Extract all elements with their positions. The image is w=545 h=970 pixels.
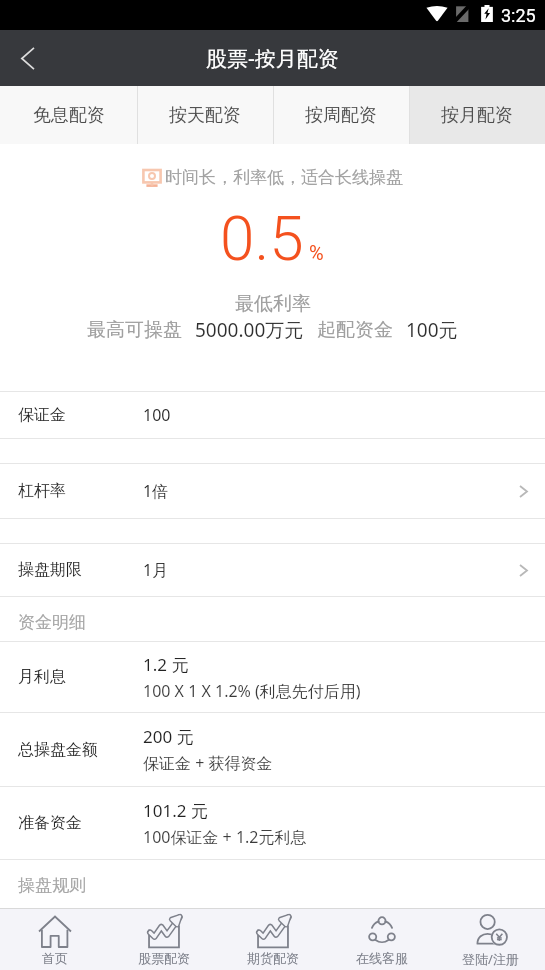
button[interactable]: 按月配资 [409, 86, 545, 144]
staticText: 1倍 [143, 480, 169, 502]
staticText: 操盘规则 [18, 875, 86, 896]
staticText: 按周配资 [305, 104, 377, 127]
staticText: 首页 [42, 950, 68, 966]
staticText: 保证金 + 获得资金 [143, 752, 273, 774]
staticText: 100 [143, 404, 171, 426]
staticText: 准备资金 [18, 813, 82, 833]
staticText: 按月配资 [441, 104, 513, 127]
button[interactable]: 在线客服 [327, 909, 436, 970]
staticText: 1.2 元 [143, 653, 189, 676]
staticText: 资金明细 [18, 612, 86, 633]
button[interactable]: 股票配资 [109, 909, 218, 970]
staticText: 0.5 [220, 202, 304, 275]
button[interactable]: 按周配资 [273, 86, 409, 144]
staticText: 3:25 [501, 5, 536, 26]
staticText: 登陆/注册 [462, 950, 519, 968]
staticText: 1月 [143, 559, 169, 581]
staticText: 最低利率 [235, 292, 311, 316]
staticText: 101.2 元 [143, 799, 208, 822]
staticText: 100元 [406, 317, 458, 343]
staticText: 最高可操盘 [87, 318, 182, 342]
button[interactable]: 总操盘金额 [0, 713, 545, 786]
button[interactable]: 杠杆率 [0, 464, 545, 518]
staticText: 操盘期限 [18, 560, 82, 580]
staticText: 起配资金 [317, 318, 393, 342]
button[interactable]: 登陆/注册 [436, 909, 545, 970]
button[interactable]: 按天配资 [137, 86, 273, 144]
button[interactable]: 期货配资 [218, 909, 327, 970]
button[interactable]: 准备资金 [0, 787, 545, 859]
staticText: % [309, 241, 324, 264]
staticText: 保证金 [18, 405, 66, 425]
staticText: 股票-按月配资 [206, 44, 339, 73]
button[interactable]: 保证金 [0, 392, 545, 438]
staticText: 100 X 1 X 1.2% (利息先付后用) [143, 680, 361, 702]
staticText: 在线客服 [356, 950, 408, 966]
button[interactable]: 操盘期限 [0, 544, 545, 596]
staticText: 总操盘金额 [18, 740, 98, 760]
button[interactable]: 首页 [0, 909, 109, 970]
button[interactable]: 免息配资 [0, 86, 137, 144]
staticText: 100保证金 + 1.2元利息 [143, 826, 307, 848]
staticText: 月利息 [18, 667, 66, 687]
staticText: 杠杆率 [18, 481, 66, 501]
staticText: 时间长，利率低，适合长线操盘 [165, 167, 403, 188]
staticText: 200 元 [143, 725, 194, 748]
staticText: 期货配资 [247, 950, 299, 966]
button[interactable]: Back [0, 30, 54, 86]
staticText: 5000.00万元 [195, 317, 304, 343]
staticText: 股票配资 [138, 950, 190, 966]
button[interactable]: 月利息 [0, 642, 545, 712]
staticText: 按天配资 [169, 104, 241, 127]
staticText: 免息配资 [33, 104, 105, 127]
